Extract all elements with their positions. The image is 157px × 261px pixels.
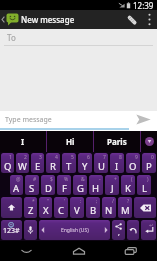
staticText: L [142, 182, 147, 195]
staticText: @ [16, 176, 21, 183]
button[interactable]: - [89, 175, 103, 195]
button[interactable]: Send [129, 111, 157, 128]
staticText: ; [96, 198, 98, 205]
staticText: & [81, 176, 85, 183]
staticText: , [118, 228, 120, 238]
button[interactable]: @ [10, 175, 23, 195]
staticText: Q [4, 160, 12, 173]
staticText: 6 [87, 154, 90, 161]
staticText: ☺ [8, 221, 15, 228]
button[interactable]: Comma [112, 220, 125, 240]
button[interactable]: ? [118, 197, 132, 218]
staticText: ( [131, 176, 133, 183]
staticText: B [90, 204, 97, 217]
button[interactable]: Hi [47, 131, 93, 152]
button[interactable]: 2 [16, 153, 29, 173]
staticText: $ [50, 176, 53, 183]
staticText: 1 [9, 154, 12, 161]
button[interactable]: ; [86, 197, 100, 218]
staticText: 123# [3, 226, 20, 236]
staticText: 7 [103, 154, 106, 161]
button[interactable]: Symbols [1, 220, 22, 240]
button[interactable]: Attach [123, 10, 141, 29]
button[interactable]: 9 [126, 153, 140, 173]
staticText: K [125, 182, 131, 195]
button[interactable]: & [73, 175, 87, 195]
staticText: ? [127, 198, 130, 205]
staticText: English (US) [61, 227, 89, 234]
staticText: To [7, 32, 16, 43]
button[interactable]: * [24, 197, 37, 218]
staticText: Z [28, 204, 34, 217]
button[interactable]: Recent apps [105, 241, 157, 261]
staticText: Hi [66, 136, 75, 147]
button[interactable]: : [70, 197, 84, 218]
staticText: M [121, 204, 130, 217]
button[interactable]: 3 [31, 153, 44, 173]
button[interactable]: More options [141, 10, 157, 29]
button[interactable]: Shift [1, 197, 22, 218]
staticText: W [18, 160, 27, 173]
staticText: E [35, 160, 41, 173]
staticText: O [129, 160, 137, 173]
staticText: U [98, 160, 105, 173]
button[interactable]: Space [39, 220, 110, 240]
staticText: # [33, 176, 37, 183]
staticText: S [29, 182, 35, 195]
staticText: + [114, 176, 117, 183]
button[interactable]: 1 [1, 153, 14, 173]
staticText: A [13, 182, 20, 195]
button[interactable]: 5 [62, 153, 76, 173]
button[interactable]: I [0, 131, 46, 152]
button[interactable]: 8 [110, 153, 124, 173]
button[interactable]: + [105, 175, 119, 195]
staticText: D [45, 182, 52, 195]
button[interactable]: Input options [141, 131, 157, 152]
staticText: % [64, 176, 69, 183]
staticText: T [66, 160, 72, 173]
staticText: F [62, 182, 67, 195]
staticText: New message [21, 14, 75, 25]
button[interactable]: / [102, 197, 116, 218]
staticText: G [77, 182, 84, 195]
staticText: X [43, 204, 49, 217]
staticText: P [146, 160, 152, 173]
staticText: 4 [55, 154, 58, 161]
button[interactable]: 0 [142, 153, 156, 173]
staticText: - [99, 176, 101, 183]
button[interactable]: " [39, 197, 52, 218]
button[interactable]: Backspace [134, 197, 156, 218]
button[interactable]: Navigate up [0, 10, 19, 29]
staticText: 3 [39, 154, 42, 161]
staticText: ) [147, 176, 149, 183]
staticText: C [58, 204, 65, 217]
staticText: * [32, 198, 35, 205]
staticText: 12:39 [133, 0, 154, 10]
staticText: Y [82, 160, 88, 173]
button[interactable]: ( [121, 175, 135, 195]
button[interactable]: $ [41, 175, 55, 195]
staticText: I [115, 160, 119, 173]
button[interactable]: Enter [141, 220, 156, 240]
staticText: V [74, 204, 80, 217]
staticText: I [21, 136, 25, 147]
button[interactable]: # [25, 175, 39, 195]
button[interactable]: Voice input [24, 220, 37, 240]
button[interactable]: 6 [78, 153, 92, 173]
staticText: 8 [119, 154, 122, 161]
button[interactable]: 7 [94, 153, 108, 173]
button[interactable]: ' [54, 197, 68, 218]
button[interactable]: % [57, 175, 71, 195]
button[interactable]: 4 [46, 153, 60, 173]
staticText: 0 [151, 154, 154, 161]
button[interactable]: Home [53, 241, 105, 261]
staticText: H [92, 182, 100, 195]
staticText: J [111, 182, 114, 195]
button[interactable]: Paris [94, 131, 140, 152]
staticText: R [50, 160, 56, 173]
staticText: / [112, 198, 114, 205]
staticText: 5 [71, 154, 74, 161]
button[interactable]: Period [127, 220, 139, 240]
button[interactable]: Hide keyboard [0, 241, 53, 261]
button[interactable]: ) [137, 175, 151, 195]
